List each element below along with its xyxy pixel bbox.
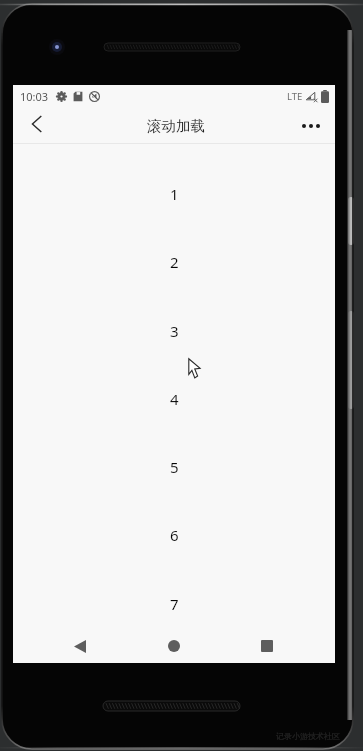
button[interactable]: 5 xyxy=(13,433,335,501)
button[interactable]: More options xyxy=(287,107,335,144)
button[interactable]: 7 xyxy=(13,570,335,638)
staticText: 2 xyxy=(170,252,179,272)
staticText: 10:03 xyxy=(20,89,49,104)
button[interactable]: Recents xyxy=(230,629,304,663)
staticText: 5 xyxy=(170,457,179,477)
button[interactable]: 4 xyxy=(13,365,335,433)
staticText: 6 xyxy=(170,525,179,545)
button[interactable]: 1 xyxy=(13,160,335,228)
staticText: 3 xyxy=(170,321,179,341)
button[interactable]: Back xyxy=(13,107,61,144)
staticText: 滚动加载 xyxy=(147,117,205,135)
staticText: 4 xyxy=(170,389,179,409)
staticText: 1 xyxy=(170,184,179,204)
button[interactable]: Back xyxy=(43,629,117,663)
button[interactable]: 2 xyxy=(13,228,335,296)
staticText: LTE xyxy=(287,90,303,103)
button[interactable]: Home xyxy=(137,629,211,663)
button[interactable]: 3 xyxy=(13,297,335,365)
staticText: 7 xyxy=(170,594,179,614)
button[interactable]: 6 xyxy=(13,501,335,569)
staticText: 记录小游技术社区 xyxy=(276,731,340,741)
